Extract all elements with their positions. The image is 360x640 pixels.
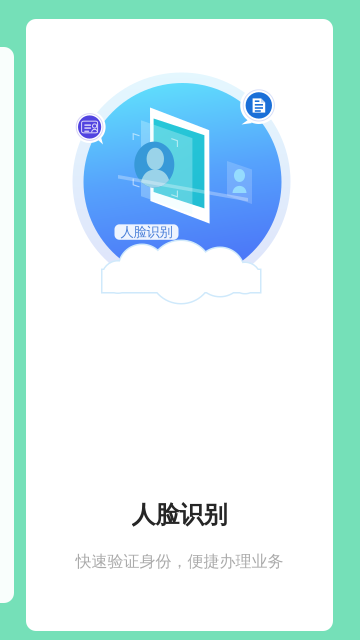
staticText: 快速验证身份，便捷办理业务 [75,551,283,571]
staticText: 人脸识别 [120,224,172,240]
staticText: 人脸识别 [131,500,227,529]
